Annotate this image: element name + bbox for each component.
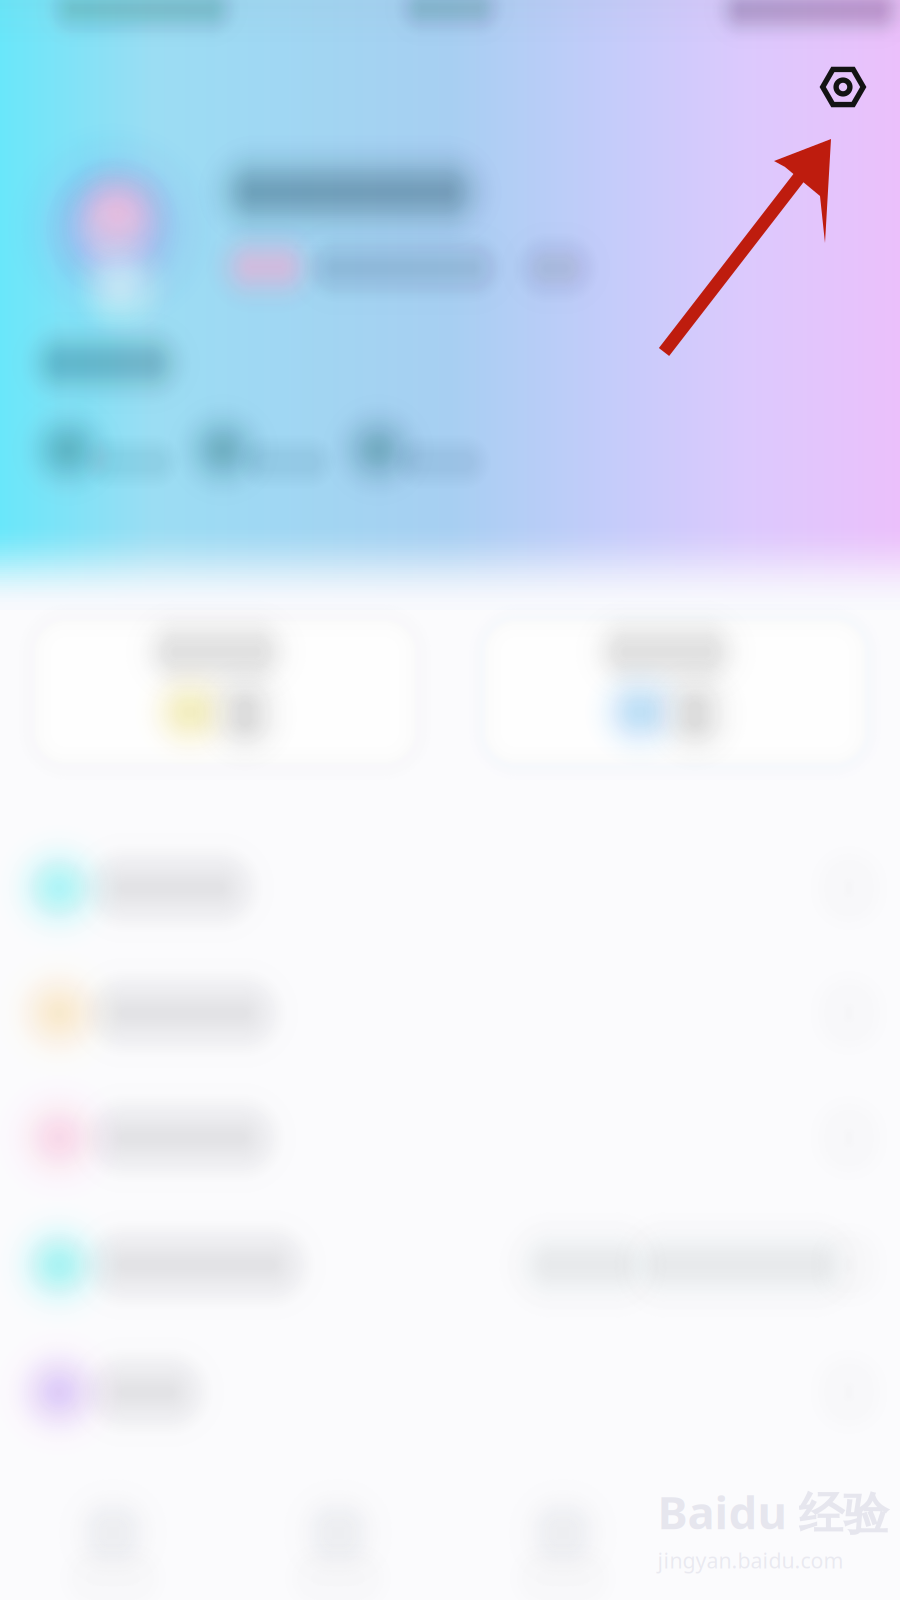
staticText: jingyan.baidu.com <box>657 1546 843 1574</box>
staticText: Baidu 经验 <box>657 1482 888 1542</box>
